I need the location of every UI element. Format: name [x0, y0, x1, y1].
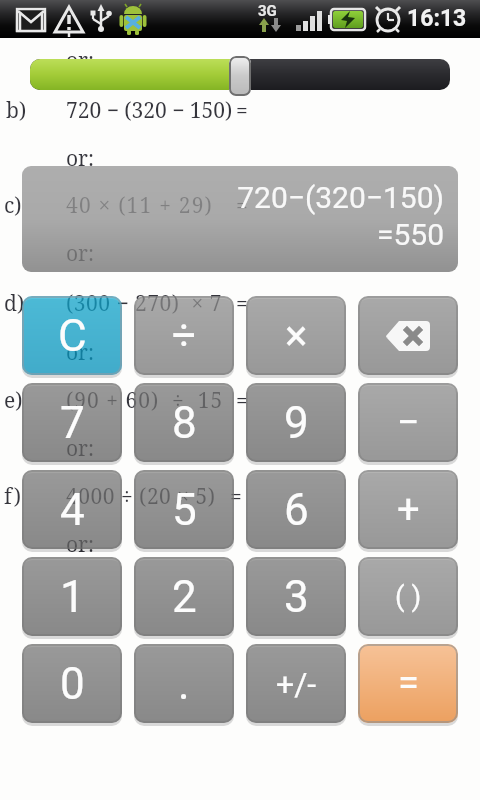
staticText: + [397, 486, 420, 533]
staticText: =550 [0, 217, 444, 252]
staticText: = [236, 96, 248, 125]
staticText: 5 [172, 484, 197, 536]
staticText: C [58, 310, 87, 362]
staticText: or: [66, 239, 95, 268]
button[interactable]: . [134, 644, 234, 723]
staticText: e) [4, 386, 23, 415]
staticText: × [285, 311, 308, 360]
staticText: 1 [60, 571, 85, 623]
button[interactable]: 2 [134, 557, 234, 636]
staticText: or: [66, 434, 95, 463]
staticText: ÷ [172, 311, 196, 360]
staticText: = [236, 289, 248, 318]
button[interactable]: × [246, 296, 346, 375]
staticText: 8 [172, 397, 197, 449]
staticText: 720 − (320 − 150) [66, 96, 233, 125]
button[interactable]: = [358, 644, 458, 723]
staticText: = [230, 482, 242, 511]
staticText: = [236, 191, 248, 220]
staticText: = [398, 661, 419, 706]
staticText: 3 [284, 571, 309, 623]
staticText: 2 [172, 571, 197, 623]
staticText: 16:13 [407, 5, 467, 32]
staticText: or: [66, 46, 95, 75]
staticText: f) [4, 482, 21, 511]
staticText: +/- [276, 665, 317, 703]
staticText: = [236, 386, 248, 415]
staticText: 6 [284, 484, 309, 536]
button[interactable]: 8 [134, 383, 234, 462]
button[interactable]: 5 [134, 470, 234, 549]
staticText: d) [4, 289, 25, 318]
button[interactable]: + [358, 470, 458, 549]
button[interactable]: 3 [246, 557, 346, 636]
staticText: c) [4, 191, 22, 220]
button[interactable]: 0 [22, 644, 122, 723]
staticText: 4 [60, 484, 85, 536]
button[interactable]: 9 [246, 383, 346, 462]
button[interactable]: +/- [246, 644, 346, 723]
staticText: or: [66, 530, 95, 559]
button[interactable]: − [358, 383, 458, 462]
button[interactable]: ( ) [358, 557, 458, 636]
button[interactable] [30, 59, 450, 90]
button[interactable]: ÷ [134, 296, 234, 375]
staticText: 7 [60, 397, 85, 449]
button[interactable]: 4 [22, 470, 122, 549]
button[interactable] [229, 56, 251, 96]
button[interactable] [358, 296, 458, 375]
staticText: (90 + 60) ÷ 15 [66, 386, 224, 415]
button[interactable]: 6 [246, 470, 346, 549]
staticText: or: [66, 144, 95, 173]
button[interactable]: 7 [22, 383, 122, 462]
staticText: ( ) [395, 580, 422, 613]
staticText: b) [6, 96, 27, 125]
button[interactable]: C [22, 296, 122, 375]
staticText: or: [66, 338, 95, 367]
staticText: 4000 ÷ (20 × 5) [66, 482, 216, 511]
staticText: 720−(320−150) [0, 180, 444, 215]
button[interactable]: 1 [22, 557, 122, 636]
staticText: 9 [284, 397, 309, 449]
staticText: 3G [258, 2, 277, 20]
staticText: 0 [60, 658, 85, 710]
staticText: − [397, 399, 420, 446]
staticText: 40 × (11 + 29) [66, 191, 214, 220]
staticText: (300 − 270) × 7 [66, 289, 222, 318]
staticText: . [178, 658, 190, 710]
